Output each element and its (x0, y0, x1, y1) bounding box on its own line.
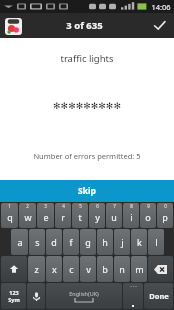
button[interactable]: Space (46, 283, 122, 309)
button[interactable]: h (97, 229, 113, 255)
button[interactable]: Shift (1, 256, 27, 282)
button[interactable]: 8 (123, 203, 139, 228)
staticText: x (52, 263, 57, 275)
button[interactable]: d (46, 229, 62, 255)
button[interactable]: x (46, 256, 62, 282)
staticText: Number of errors permitted: 5 (33, 151, 141, 161)
button[interactable]: Symbols (1, 283, 26, 309)
staticText: z (34, 263, 39, 275)
staticText: c (69, 263, 74, 275)
staticText: t (78, 211, 82, 223)
button[interactable]: c (63, 256, 79, 282)
staticText: 7 (113, 203, 116, 209)
button[interactable]: s (29, 229, 45, 255)
staticText: r (61, 211, 65, 223)
staticText: Sym (8, 296, 20, 303)
staticText: u (111, 211, 117, 223)
button[interactable]: 4 (55, 203, 71, 228)
staticText: " " " (130, 285, 137, 290)
button[interactable]: z (28, 256, 45, 282)
staticText: f (69, 236, 73, 248)
staticText: Done (149, 291, 169, 301)
staticText: h (102, 236, 108, 248)
button[interactable]: 6 (89, 203, 105, 228)
button[interactable]: g (80, 229, 96, 255)
staticText: 6 (96, 203, 99, 209)
button[interactable]: k (131, 229, 147, 255)
button[interactable]: m (131, 256, 147, 282)
staticText: 0 (164, 203, 167, 209)
staticText: v (86, 263, 91, 275)
staticText: e (43, 211, 49, 223)
staticText: English(UK) (69, 290, 99, 297)
staticText: 123 (9, 289, 19, 296)
staticText: b (102, 263, 108, 275)
button[interactable]: v (80, 256, 96, 282)
staticText: Skip (78, 185, 96, 197)
staticText: j (121, 236, 124, 248)
button[interactable]: 0 (157, 203, 173, 228)
staticText: 4 (62, 203, 65, 209)
staticText: n (119, 263, 125, 275)
button[interactable]: n (114, 256, 130, 282)
button[interactable]: Backspace (148, 256, 173, 282)
staticText: 3 (44, 203, 47, 209)
staticText: w (24, 211, 32, 223)
button[interactable]: 5 (72, 203, 88, 228)
button[interactable]: Period (123, 283, 143, 309)
staticText: l (155, 236, 158, 248)
button[interactable]: Done (144, 283, 173, 309)
button[interactable]: Voice input (27, 283, 45, 309)
staticText: k (137, 236, 142, 248)
staticText: y (95, 211, 100, 223)
button[interactable]: Confirm (144, 13, 174, 38)
staticText: ✻✻✻✻✻✻✻✻✻ (53, 101, 121, 111)
button[interactable]: j (114, 229, 130, 255)
staticText: 3 of 635 (66, 19, 103, 32)
staticText: g (85, 236, 91, 248)
staticText: 2 (26, 203, 29, 209)
button[interactable]: l (148, 229, 164, 255)
staticText: 8 (130, 203, 133, 209)
button[interactable]: f (63, 229, 79, 255)
staticText: i (130, 211, 133, 223)
staticText: o (145, 211, 151, 223)
staticText: a (17, 236, 23, 248)
staticText: 14:06 (151, 2, 171, 12)
button[interactable]: 1 (1, 203, 18, 228)
staticText: traffic lights (60, 52, 114, 65)
button[interactable]: Skip (0, 180, 174, 202)
button[interactable]: 7 (106, 203, 122, 228)
staticText: m (135, 263, 144, 275)
staticText: 9 (147, 203, 150, 209)
staticText: d (51, 236, 57, 248)
staticText: q (7, 211, 13, 223)
staticText: p (162, 211, 168, 223)
button[interactable]: 3 (37, 203, 54, 228)
button[interactable]: 9 (140, 203, 156, 228)
staticText: s (35, 236, 40, 248)
button[interactable]: 2 (19, 203, 36, 228)
staticText: 5 (79, 203, 82, 209)
button[interactable]: b (97, 256, 113, 282)
button[interactable]: a (11, 229, 28, 255)
staticText: 1 (8, 203, 11, 209)
button[interactable]: Up (2, 15, 24, 37)
